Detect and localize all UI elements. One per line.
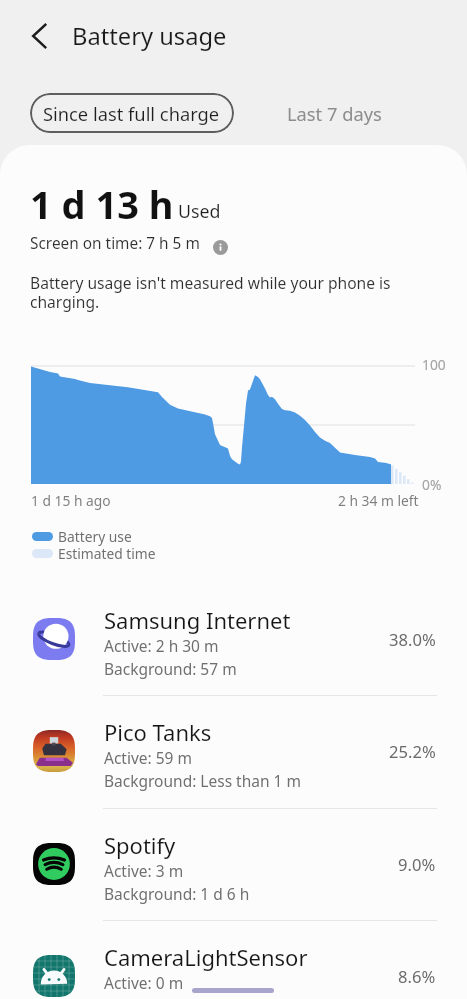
- staticText: 0%: [422, 475, 442, 494]
- staticText: Battery usage: [72, 20, 227, 52]
- staticText: Active: 3 m: [104, 860, 184, 881]
- button[interactable]: More information: [213, 240, 228, 255]
- staticText: Estimated time: [58, 544, 156, 563]
- button[interactable]: Since last full charge: [30, 93, 234, 133]
- staticText: Active: 0 m: [104, 972, 184, 993]
- button[interactable]: Pico Tanks: [0, 695, 467, 807]
- button[interactable]: CameraLightSensor: [0, 920, 467, 999]
- staticText: 9.0%: [398, 853, 436, 876]
- staticText: Active: 2 h 30 m: [104, 635, 219, 656]
- staticText: Used: [178, 199, 221, 223]
- staticText: Screen on time: 7 h 5 m: [30, 233, 200, 254]
- staticText: 2 h 34 m left: [338, 491, 419, 510]
- button[interactable]: Navigate up: [18, 14, 62, 58]
- staticText: Background: 1 d 6 h: [104, 883, 250, 904]
- staticText: Samsung Internet: [104, 605, 291, 635]
- staticText: Last 7 days: [287, 101, 382, 126]
- staticText: 1 d 13 h: [30, 178, 174, 230]
- staticText: Pico Tanks: [104, 717, 212, 747]
- staticText: Since last full charge: [43, 101, 220, 126]
- staticText: Battery usage isn't measured while your …: [30, 272, 391, 293]
- button[interactable]: Last 7 days: [258, 93, 412, 133]
- staticText: Active: 59 m: [104, 747, 192, 768]
- staticText: 25.2%: [389, 740, 436, 763]
- staticText: Background: Less than 1 m: [104, 770, 301, 791]
- staticText: Battery use: [58, 527, 132, 546]
- staticText: 1 d 15 h ago: [31, 491, 111, 510]
- button[interactable]: Samsung Internet: [0, 583, 467, 695]
- staticText: CameraLightSensor: [104, 942, 308, 972]
- staticText: Background: 57 m: [104, 658, 237, 679]
- staticText: 100: [422, 355, 446, 374]
- staticText: 8.6%: [398, 965, 436, 988]
- staticText: charging.: [30, 291, 100, 312]
- staticText: Spotify: [104, 830, 176, 860]
- staticText: 38.0%: [389, 628, 436, 651]
- button[interactable]: Spotify: [0, 808, 467, 920]
